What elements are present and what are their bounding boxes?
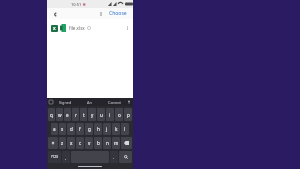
button[interactable]: t (80, 108, 87, 121)
staticText: a (53, 126, 56, 132)
staticText: c (79, 140, 82, 146)
button[interactable]: l (121, 123, 129, 135)
staticText: m (114, 140, 119, 146)
button[interactable]: v (85, 137, 93, 149)
staticText: o (118, 112, 121, 118)
button[interactable]: n (103, 137, 111, 149)
staticText: t (83, 112, 85, 118)
button[interactable]: Signed (53, 100, 77, 105)
button[interactable]: i (106, 108, 114, 121)
staticText: h (97, 126, 100, 132)
button[interactable]: g (85, 123, 93, 135)
button[interactable]: k (112, 123, 120, 135)
staticText: z (61, 140, 64, 146)
staticText: r (75, 112, 77, 118)
staticText: v (88, 140, 91, 146)
staticText: w (58, 112, 62, 118)
button[interactable]: m (112, 137, 120, 149)
button[interactable]: x (67, 137, 75, 149)
staticText: ?123 (51, 155, 58, 159)
button[interactable]: ?123 (48, 151, 61, 163)
button[interactable]: e (64, 108, 71, 121)
button[interactable]: y (88, 108, 96, 121)
staticText: Choose (109, 10, 127, 17)
button[interactable]: z (59, 137, 66, 149)
button[interactable]: Clipboard (49, 100, 53, 104)
staticText: e (66, 112, 69, 118)
button[interactable]: X (47, 21, 133, 35)
staticText: j (106, 126, 108, 132)
staticText: n (106, 140, 109, 146)
button[interactable]: Cannot (102, 100, 127, 105)
staticText: . (113, 155, 115, 160)
button[interactable]: o (115, 108, 123, 121)
staticText: , (65, 155, 67, 160)
staticText: s (61, 126, 64, 132)
button[interactable]: Voice input (127, 100, 131, 104)
button[interactable]: c (76, 137, 84, 149)
button[interactable]: s (59, 123, 66, 135)
button[interactable]: w (56, 108, 63, 121)
button[interactable]: Search (119, 151, 132, 163)
staticText: g (88, 126, 91, 132)
staticText: f (79, 126, 81, 132)
staticText: k (115, 126, 118, 132)
staticText: l (124, 126, 126, 132)
button[interactable]: . (110, 151, 118, 163)
button[interactable]: h (94, 123, 102, 135)
button[interactable]: Back (51, 10, 59, 18)
staticText: q (50, 112, 53, 118)
staticText: Cannot (108, 100, 121, 105)
button[interactable]: Backspace (121, 137, 132, 149)
staticText: b (97, 140, 100, 146)
button[interactable]: More options (97, 10, 104, 17)
button[interactable]: d (67, 123, 75, 135)
staticText: y (91, 112, 94, 118)
staticText: u (100, 112, 103, 118)
staticText: x (70, 140, 73, 146)
button[interactable]: j (103, 123, 111, 135)
button[interactable]: Choose (107, 9, 129, 18)
staticText: file.xlsx (69, 25, 85, 31)
button[interactable]: a (51, 123, 58, 135)
button[interactable]: f (76, 123, 84, 135)
staticText: 10:51 (71, 2, 82, 7)
staticText: Signed (59, 100, 72, 105)
staticText: p (127, 112, 130, 118)
staticText: d (70, 126, 73, 132)
button[interactable]: b (94, 137, 102, 149)
button[interactable]: q (48, 108, 55, 121)
staticText: i (109, 112, 111, 118)
button[interactable]: r (72, 108, 79, 121)
staticText: An (87, 100, 92, 105)
button[interactable]: u (97, 108, 105, 121)
button[interactable]: p (124, 108, 132, 121)
button[interactable]: An (77, 100, 102, 105)
button[interactable]: , (62, 151, 70, 163)
button[interactable]: Shift (48, 137, 58, 149)
staticText: X (53, 26, 56, 31)
